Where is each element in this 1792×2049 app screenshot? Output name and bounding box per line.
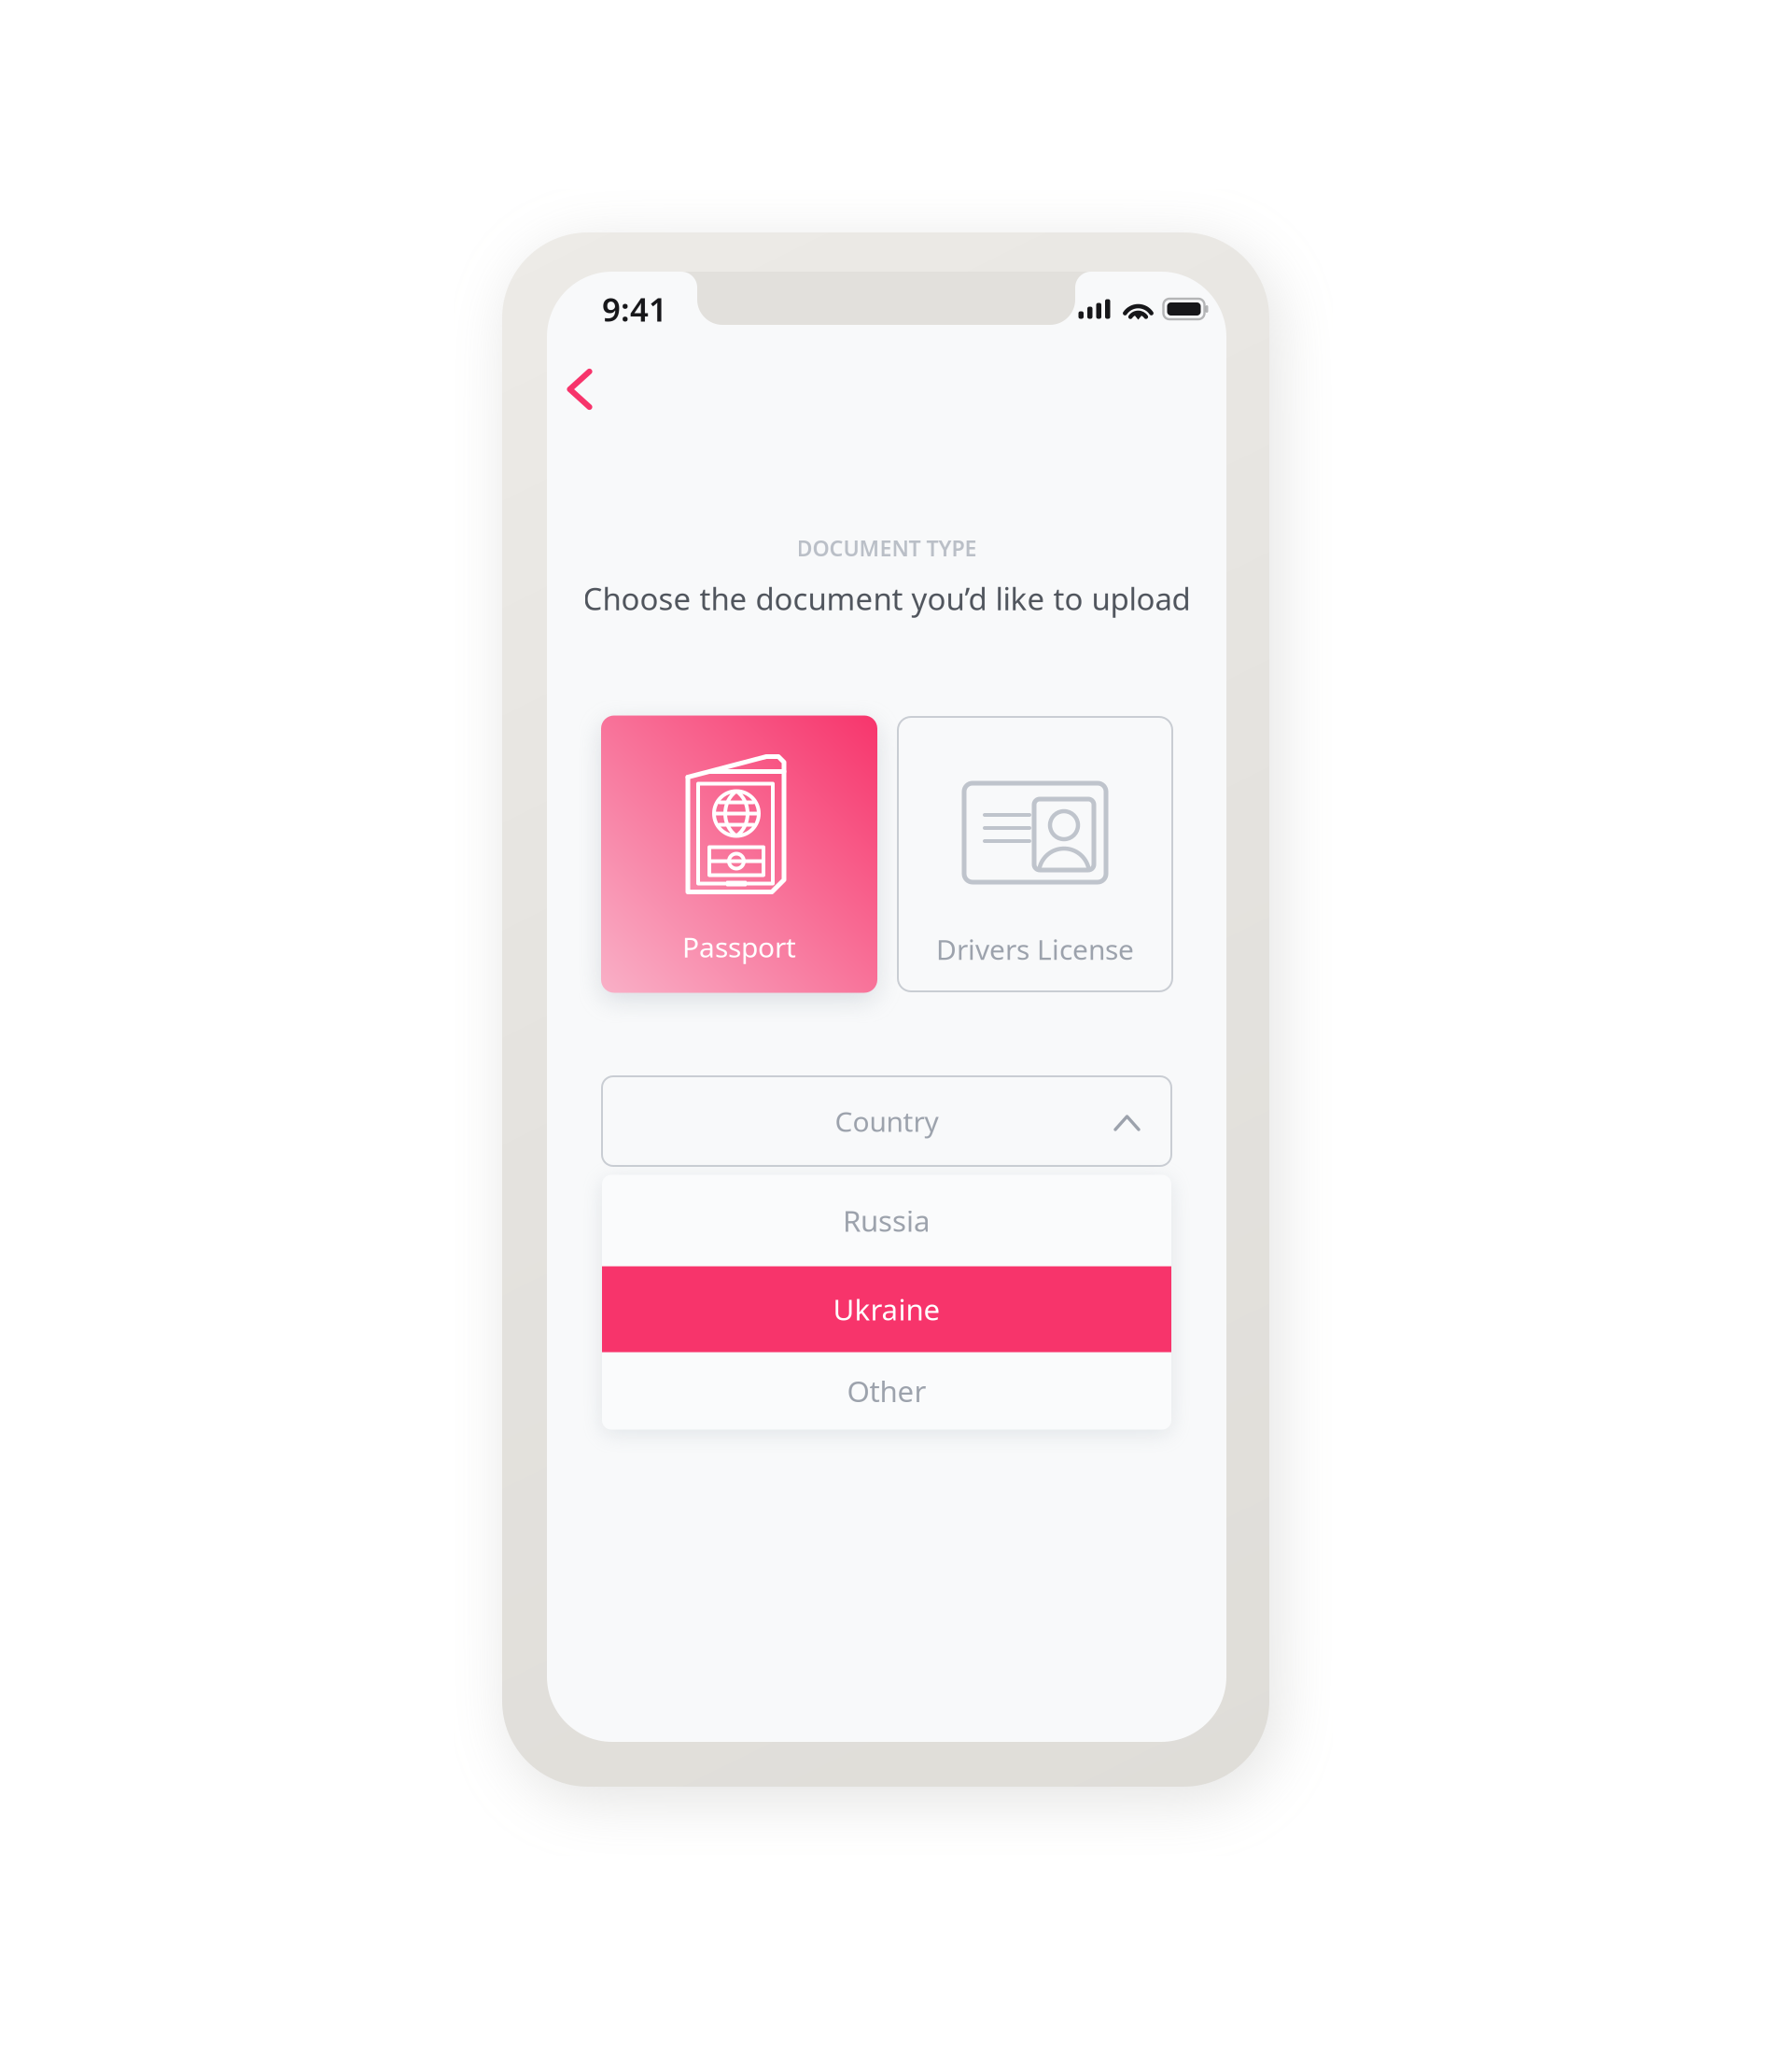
staticText: Other — [847, 1371, 926, 1411]
staticText: Country — [835, 1102, 938, 1140]
button[interactable]: Russia — [602, 1175, 1171, 1266]
staticText: Drivers License — [936, 930, 1134, 968]
button[interactable]: Passport — [601, 716, 877, 993]
staticText: Russia — [843, 1201, 931, 1240]
button[interactable]: Ukraine — [602, 1266, 1171, 1352]
button[interactable]: Country — [602, 1076, 1171, 1166]
staticText: DOCUMENT TYPE — [797, 533, 977, 563]
staticText: Ukraine — [833, 1289, 940, 1329]
staticText: Passport — [682, 928, 796, 966]
staticText: 9:41 — [602, 287, 667, 331]
staticText: Choose the document you’d like to upload — [583, 577, 1190, 619]
button[interactable]: Back — [542, 352, 617, 427]
button[interactable]: Drivers License — [898, 717, 1172, 991]
button[interactable]: Other — [602, 1352, 1171, 1430]
